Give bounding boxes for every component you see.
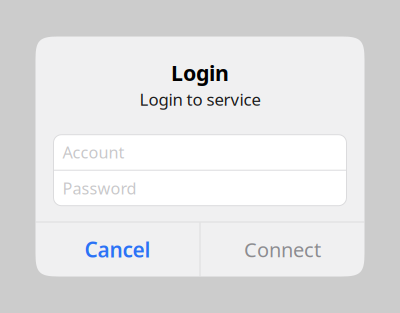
staticText: Connect (244, 236, 321, 263)
button[interactable]: Password (53, 171, 346, 206)
button[interactable]: Account (53, 135, 346, 170)
button[interactable]: Connect (200, 222, 364, 276)
staticText: Login to service (139, 88, 260, 111)
staticText: Password (62, 177, 136, 199)
staticText: Login (171, 58, 229, 87)
staticText: Account (62, 141, 124, 163)
button[interactable]: Cancel (35, 222, 199, 276)
staticText: Cancel (84, 235, 150, 264)
